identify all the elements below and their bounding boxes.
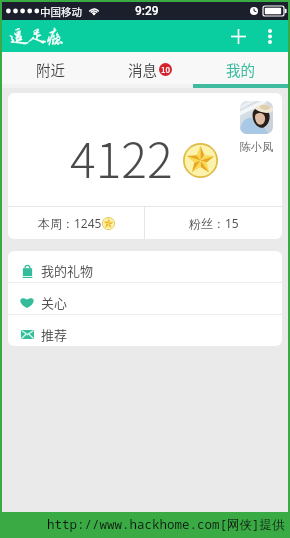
staticText: 关心: [41, 293, 68, 312]
staticText: http://www.hackhome.com[网侠]提供: [47, 516, 285, 533]
staticText: 我的礼物: [41, 261, 94, 280]
button[interactable]: 本周：1245: [8, 207, 144, 239]
button[interactable]: 关心: [8, 283, 282, 314]
button[interactable]: 粉丝：15: [145, 207, 282, 239]
button[interactable]: 我的: [193, 52, 288, 84]
staticText: 逗足瘾: [10, 26, 64, 46]
staticText: 粉丝：15: [189, 215, 239, 231]
button[interactable]: Add: [222, 20, 254, 52]
staticText: 4122: [70, 122, 173, 192]
staticText: 陈小凤: [240, 140, 273, 154]
staticText: 中国移动: [40, 4, 82, 19]
staticText: 本周：1245: [38, 215, 102, 231]
button[interactable]: 消息: [98, 52, 193, 84]
button[interactable]: Avatar: [240, 101, 273, 134]
button[interactable]: 推荐: [8, 315, 282, 346]
staticText: 消息: [128, 59, 157, 80]
staticText: 附近: [36, 59, 65, 80]
staticText: 9:29: [135, 4, 159, 18]
button[interactable]: 我的礼物: [8, 251, 282, 282]
staticText: 推荐: [41, 325, 68, 344]
button[interactable]: More options: [254, 20, 286, 52]
staticText: 10: [161, 64, 171, 76]
staticText: 我的: [226, 59, 255, 80]
button[interactable]: 附近: [2, 52, 98, 84]
